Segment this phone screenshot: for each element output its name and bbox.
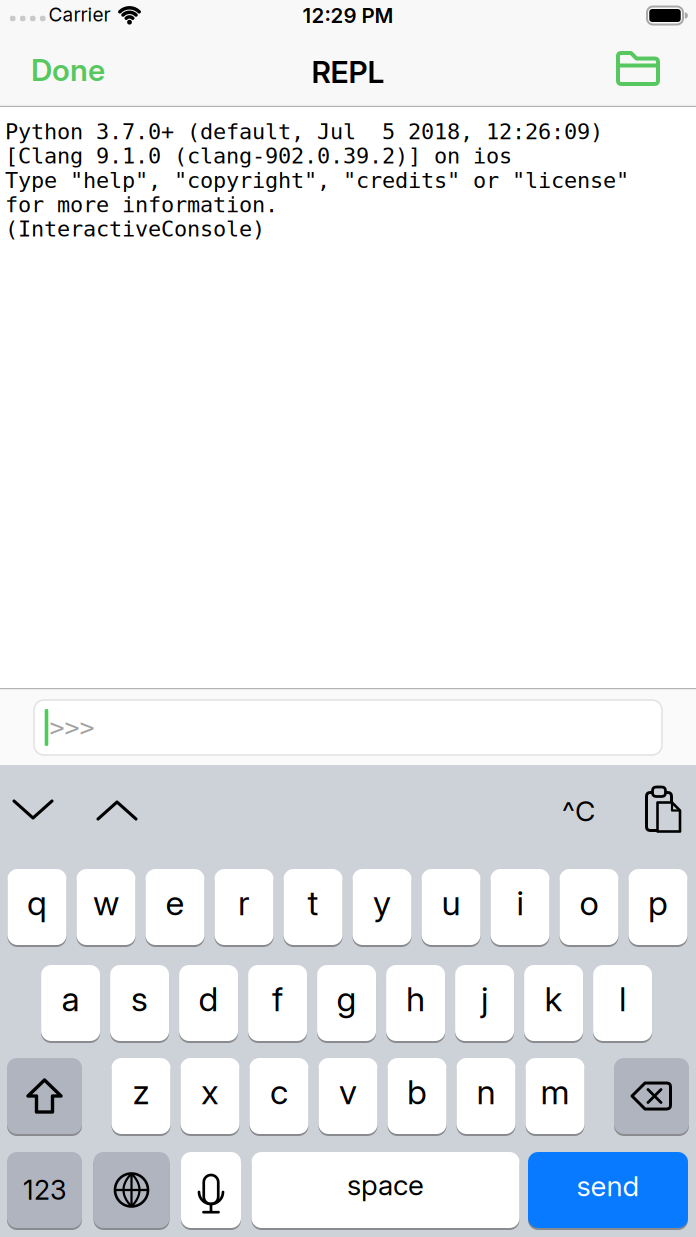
staticText: [Clang 9.1.0 (clang-902.0.39.2)] on ios — [5, 143, 512, 169]
staticText: z — [132, 1071, 149, 1112]
button[interactable]: b — [387, 1058, 446, 1134]
button[interactable]: send — [528, 1152, 688, 1228]
staticText: q — [27, 882, 47, 923]
staticText: h — [406, 978, 425, 1019]
staticText: k — [545, 978, 563, 1019]
staticText: e — [165, 882, 184, 923]
staticText: b — [407, 1071, 427, 1112]
button[interactable]: p — [628, 869, 687, 945]
staticText: ^C — [562, 794, 595, 828]
staticText: c — [270, 1071, 288, 1112]
staticText: u — [441, 882, 460, 923]
button[interactable] — [616, 52, 660, 88]
button[interactable]: n — [456, 1058, 515, 1134]
staticText: Type "help", "copyright", "credits" or "… — [5, 168, 629, 193]
button[interactable] — [93, 1152, 169, 1228]
staticText: n — [476, 1071, 495, 1112]
staticText: j — [481, 978, 488, 1019]
button[interactable] — [11, 799, 55, 821]
staticText: for more information. — [5, 192, 278, 217]
staticText: w — [93, 882, 119, 923]
button[interactable]: f — [248, 965, 307, 1041]
staticText: r — [238, 882, 250, 923]
button[interactable]: v — [318, 1058, 377, 1134]
staticText: v — [339, 1071, 357, 1112]
button[interactable]: o — [559, 869, 618, 945]
button[interactable] — [614, 1058, 689, 1134]
button[interactable]: c — [249, 1058, 308, 1134]
staticText: y — [373, 882, 391, 923]
button[interactable]: t — [283, 869, 342, 945]
staticText: >>> — [49, 713, 94, 742]
staticText: o — [579, 882, 598, 923]
button[interactable]: ^C — [562, 794, 595, 828]
staticText: Python 3.7.0+ (default, Jul 5 2018, 12:2… — [5, 119, 603, 144]
staticText: s — [131, 978, 148, 1019]
staticText: a — [62, 978, 80, 1019]
button[interactable] — [181, 1152, 241, 1228]
button[interactable]: space — [251, 1152, 519, 1228]
button[interactable]: i — [490, 869, 549, 945]
staticText: i — [516, 882, 523, 923]
staticText: Carrier — [48, 3, 110, 26]
staticText: g — [337, 978, 357, 1019]
button[interactable] — [95, 799, 139, 821]
staticText: 12:29 PM — [302, 3, 393, 28]
button[interactable]: d — [179, 965, 238, 1041]
staticText: x — [201, 1071, 219, 1112]
button[interactable]: l — [593, 965, 652, 1041]
button[interactable]: Done — [31, 52, 105, 88]
button[interactable]: y — [352, 869, 411, 945]
button[interactable]: k — [524, 965, 583, 1041]
staticText: t — [307, 882, 318, 923]
button[interactable]: e — [145, 869, 204, 945]
button[interactable]: z — [111, 1058, 170, 1134]
button[interactable]: r — [214, 869, 273, 945]
button[interactable] — [645, 785, 681, 833]
button[interactable]: u — [421, 869, 480, 945]
staticText: 123 — [23, 1174, 66, 1206]
button[interactable]: h — [386, 965, 445, 1041]
staticText: REPL — [311, 54, 384, 90]
button[interactable]: a — [41, 965, 100, 1041]
staticText: f — [272, 978, 283, 1019]
staticText: space — [347, 1168, 424, 1202]
staticText: l — [619, 978, 626, 1019]
button[interactable]: x — [180, 1058, 239, 1134]
button[interactable]: >>> — [34, 700, 662, 755]
button[interactable]: m — [525, 1058, 584, 1134]
button[interactable]: s — [110, 965, 169, 1041]
button[interactable]: g — [317, 965, 376, 1041]
staticText: m — [540, 1071, 569, 1112]
button[interactable] — [7, 1058, 82, 1134]
button[interactable]: w — [76, 869, 135, 945]
staticText: send — [576, 1169, 639, 1203]
staticText: p — [648, 882, 668, 923]
button[interactable]: q — [7, 869, 66, 945]
button[interactable]: j — [455, 965, 514, 1041]
staticText: (InteractiveConsole) — [5, 216, 265, 242]
staticText: d — [199, 978, 219, 1019]
button[interactable]: 123 — [7, 1152, 82, 1228]
staticText: Done — [31, 52, 105, 88]
